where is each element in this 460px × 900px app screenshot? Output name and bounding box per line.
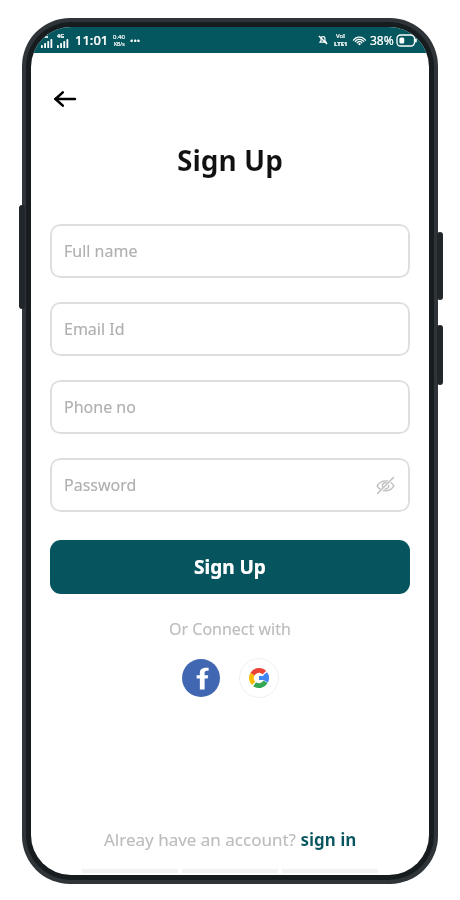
- staticText: Sign Up: [177, 141, 283, 179]
- staticText: 11:01: [75, 31, 109, 49]
- staticText: 4G: [41, 32, 49, 39]
- staticText: LTE1: [334, 40, 348, 48]
- staticText: Password: [64, 474, 137, 496]
- staticText: KB/s: [114, 41, 125, 48]
- staticText: Sign Up: [194, 554, 266, 580]
- button[interactable]: Sign Up: [50, 540, 410, 594]
- button[interactable]: Toggle password visibility: [372, 472, 398, 498]
- button[interactable]: Full name: [50, 224, 410, 278]
- button[interactable]: Alreay have an account? sign in: [31, 828, 429, 851]
- button[interactable]: Password: [50, 458, 410, 512]
- button[interactable]: Sign up with Facebook: [182, 659, 220, 697]
- staticText: Email Id: [64, 318, 125, 340]
- staticText: 38%: [370, 32, 394, 48]
- staticText: Phone no: [64, 396, 136, 418]
- button[interactable]: Phone no: [50, 380, 410, 434]
- staticText: Full name: [64, 240, 138, 262]
- staticText: Alreay have an account? sign in: [104, 828, 357, 851]
- button[interactable]: Sign up with Google: [239, 658, 279, 698]
- staticText: 4G: [57, 32, 65, 39]
- button[interactable]: Email Id: [50, 302, 410, 356]
- button[interactable]: Back: [45, 79, 85, 119]
- staticText: •••: [130, 34, 141, 46]
- staticText: Or Connect with: [169, 618, 291, 640]
- staticText: VoI: [336, 32, 346, 40]
- staticText: 0.40: [113, 33, 125, 41]
